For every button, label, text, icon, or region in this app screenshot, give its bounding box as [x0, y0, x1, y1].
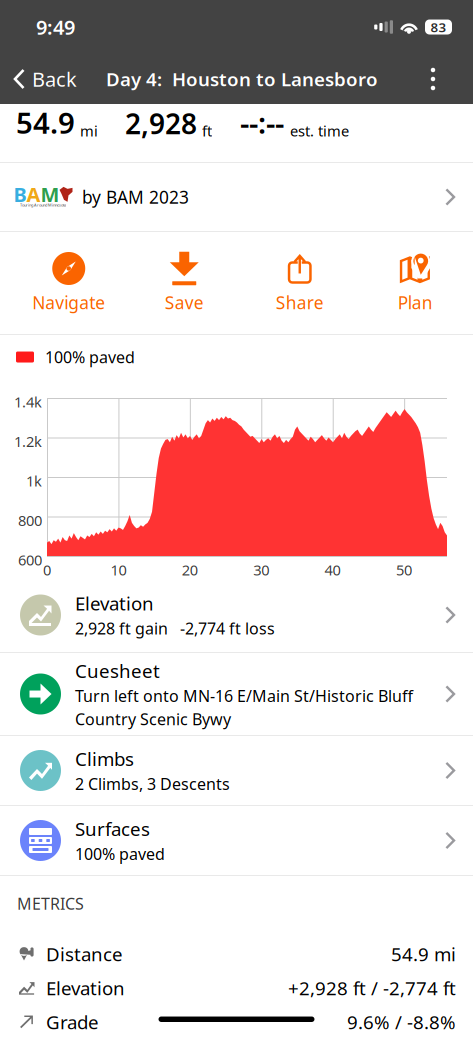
staticText: A [26, 181, 40, 208]
staticText: 100% paved [45, 346, 135, 368]
staticText: 83 [430, 18, 446, 36]
staticText: Cuesheet [75, 658, 160, 683]
staticText: Touring Around Minnesota [20, 202, 66, 208]
staticText: 1.2k [14, 431, 42, 451]
staticText: 40 [325, 560, 341, 579]
staticText: Turn left onto MN-16 E/Main St/Historic … [75, 685, 413, 706]
staticText: mi [80, 121, 98, 140]
staticText: 9:49 [36, 14, 75, 40]
button[interactable]: Back [0, 54, 83, 104]
staticText: 50 [396, 560, 412, 579]
staticText: --:-- [240, 103, 284, 142]
staticText: 30 [253, 560, 269, 579]
staticText: 2 Climbs, 3 Descents [75, 773, 230, 794]
staticText: 1.4k [14, 392, 42, 411]
button[interactable]: Save [126, 232, 242, 334]
staticText: Navigate [32, 291, 105, 314]
button[interactable]: Plan [357, 232, 473, 334]
staticText: Country Scenic Bywy [75, 708, 231, 730]
staticText: 800 [18, 510, 42, 530]
staticText: METRICS [17, 893, 84, 914]
button[interactable]: Navigate [11, 232, 126, 334]
staticText: 2,928 ft gain -2,774 ft loss [75, 618, 275, 639]
staticText: Grade [46, 1010, 99, 1034]
button[interactable]: Elevation [0, 578, 473, 652]
button[interactable]: B [0, 163, 473, 231]
staticText: 54.9 mi [391, 942, 456, 966]
button[interactable]: Cuesheet [0, 653, 473, 735]
staticText: Climbs [75, 746, 134, 771]
staticText: +2,928 ft / -2,774 ft [288, 976, 456, 1000]
staticText: Distance [46, 942, 123, 966]
staticText: B [13, 181, 26, 208]
staticText: est. time [290, 121, 349, 140]
button[interactable]: Climbs [0, 736, 473, 805]
staticText: 10 [110, 560, 126, 579]
staticText: Save [165, 291, 204, 314]
staticText: 9.6% / -8.8% [347, 1010, 456, 1034]
staticText: 2,928 [125, 105, 197, 142]
button[interactable]: More options [415, 54, 473, 104]
button[interactable]: Surfaces [0, 806, 473, 875]
staticText: Plan [398, 291, 433, 314]
staticText: Share [276, 291, 324, 314]
staticText: 54.9 [16, 103, 75, 142]
staticText: 1k [26, 471, 42, 490]
button[interactable]: Share [242, 232, 357, 334]
staticText: Day 4: Houston to Lanesboro [106, 67, 378, 91]
staticText: Surfaces [75, 816, 150, 841]
staticText: 600 [18, 550, 42, 569]
staticText: Elevation [46, 976, 125, 1000]
staticText: Back [32, 66, 77, 92]
staticText: 0 [43, 560, 51, 579]
staticText: by BAM 2023 [82, 185, 189, 208]
staticText: 20 [182, 560, 198, 579]
staticText: M [40, 181, 59, 208]
staticText: Elevation [75, 591, 154, 616]
staticText: 100% paved [75, 843, 165, 864]
staticText: ft [202, 121, 212, 140]
